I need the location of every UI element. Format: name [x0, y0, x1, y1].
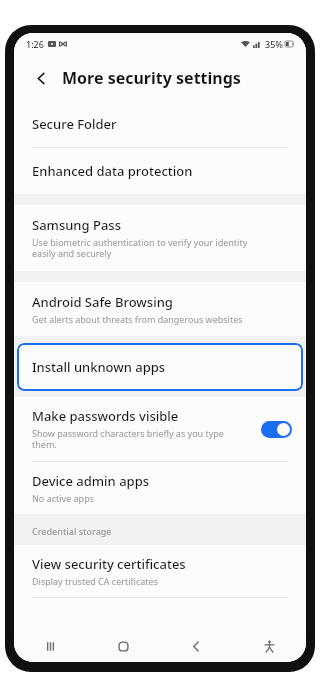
staticText: Show password characters briefly as you … — [32, 427, 224, 451]
staticText: More security settings — [62, 67, 241, 89]
staticText: 1:26 — [26, 38, 44, 50]
button[interactable]: Back — [30, 67, 52, 89]
staticText: Display trusted CA certificates — [32, 575, 158, 587]
button[interactable]: Samsung Pass — [14, 205, 306, 271]
button[interactable]: Device admin apps — [14, 462, 306, 514]
staticText: Install unknown apps — [32, 358, 166, 376]
staticText: 35% — [265, 38, 283, 50]
staticText: Enhanced data protection — [32, 162, 193, 180]
staticText: Secure Folder — [32, 115, 117, 133]
staticText: Android Safe Browsing — [32, 293, 173, 311]
button[interactable]: Install unknown apps — [17, 343, 303, 391]
staticText: Make passwords visible — [32, 407, 179, 425]
staticText: Device admin apps — [32, 472, 150, 490]
button[interactable]: Secure Folder — [14, 101, 306, 148]
button[interactable]: Recents — [14, 630, 87, 662]
button[interactable]: Android Safe Browsing — [14, 282, 306, 336]
button[interactable]: Enhanced data protection — [14, 148, 306, 194]
staticText: No active apps — [32, 492, 94, 504]
staticText: Samsung Pass — [32, 216, 121, 234]
button[interactable]: Back — [160, 630, 233, 662]
button[interactable]: Make passwords visible — [14, 397, 306, 462]
button[interactable]: Make passwords visible toggle — [261, 421, 292, 438]
button[interactable]: View security certificates — [14, 545, 306, 598]
staticText: Use biometric authentication to verify y… — [32, 236, 248, 260]
button[interactable]: Home — [87, 630, 160, 662]
button[interactable]: Accessibility — [233, 630, 306, 662]
staticText: View security certificates — [32, 555, 186, 573]
staticText: Get alerts about threats from dangerous … — [32, 313, 243, 325]
staticText: Credential storage — [32, 525, 112, 537]
